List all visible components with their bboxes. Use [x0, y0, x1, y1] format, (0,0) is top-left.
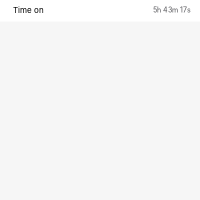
staticText: 5h 43m 17s: [153, 6, 191, 14]
staticText: Time on: [13, 5, 44, 15]
button[interactable]: Time on: [0, 0, 200, 21]
